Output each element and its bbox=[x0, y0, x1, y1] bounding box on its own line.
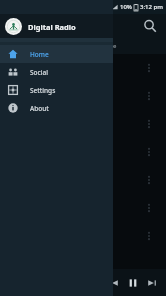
button[interactable]: More options bbox=[144, 231, 154, 241]
button[interactable]: More options bbox=[144, 91, 154, 101]
button[interactable]: More options bbox=[0, 54, 166, 82]
button[interactable]: More options bbox=[144, 119, 154, 129]
button[interactable]: Next bbox=[146, 277, 158, 289]
button[interactable]: Pause bbox=[126, 276, 140, 290]
button[interactable]: Home bbox=[0, 45, 113, 63]
staticText: Social bbox=[30, 68, 48, 77]
button[interactable]: Social bbox=[0, 63, 113, 81]
staticText: 3:12 pm bbox=[140, 3, 163, 11]
button[interactable]: More options bbox=[0, 138, 166, 166]
button[interactable]: More options bbox=[0, 194, 166, 222]
button[interactable]: More options bbox=[0, 166, 166, 194]
button[interactable]: More options bbox=[144, 175, 154, 185]
button[interactable]: More options bbox=[144, 203, 154, 213]
button[interactable]: Previous bbox=[108, 277, 120, 289]
staticText: Home bbox=[30, 50, 49, 59]
staticText: Digital Radio bbox=[28, 22, 76, 32]
button[interactable]: More options bbox=[0, 110, 166, 138]
button[interactable]: More options bbox=[0, 82, 166, 110]
button[interactable]: More options bbox=[144, 147, 154, 157]
staticText: About bbox=[30, 104, 49, 113]
button[interactable]: About bbox=[0, 99, 113, 117]
button[interactable]: More options bbox=[144, 63, 154, 73]
staticText: Settings bbox=[30, 86, 56, 95]
button[interactable]: Search bbox=[142, 18, 158, 34]
button[interactable]: Settings bbox=[0, 81, 113, 99]
staticText: Favorite bbox=[93, 42, 117, 50]
staticText: 10% bbox=[120, 3, 132, 11]
button[interactable]: More options bbox=[0, 222, 166, 250]
